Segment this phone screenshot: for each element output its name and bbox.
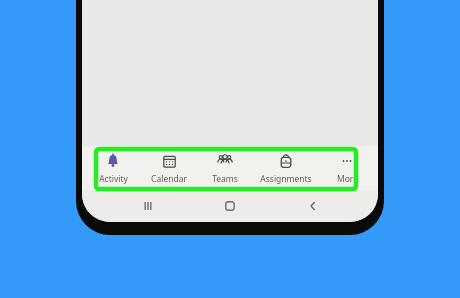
button[interactable]: Activity — [88, 152, 138, 185]
button[interactable]: Assignments — [256, 152, 316, 185]
button[interactable]: More — [322, 152, 372, 185]
button[interactable]: Teams — [200, 152, 250, 185]
staticText: Assignments — [260, 173, 312, 185]
staticText: Calendar — [151, 173, 187, 185]
button[interactable]: Home — [213, 190, 247, 222]
button[interactable]: Back — [296, 190, 330, 222]
staticText: More — [337, 173, 358, 185]
button[interactable]: Recents — [131, 190, 165, 222]
staticText: Activity — [99, 173, 128, 185]
button[interactable]: Calendar — [144, 152, 194, 185]
staticText: Teams — [212, 173, 238, 185]
